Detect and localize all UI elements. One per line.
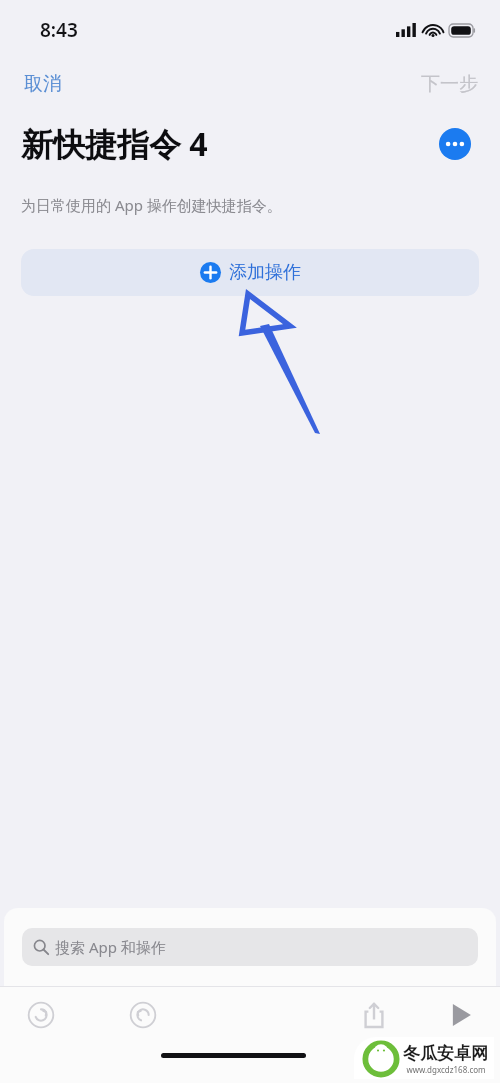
staticText: 冬瓜安卓网 — [403, 1043, 488, 1064]
button[interactable]: Run — [440, 994, 482, 1036]
staticText: 添加操作 — [229, 261, 301, 284]
button[interactable]: Undo — [20, 994, 62, 1036]
button[interactable]: Share — [353, 994, 395, 1036]
button[interactable]: Redo — [122, 994, 164, 1036]
staticText: 下一步 — [421, 72, 478, 96]
staticText: www.dgxcdz168.com — [406, 1064, 486, 1075]
staticText: 为日常使用的 App 操作创建快捷指令。 — [21, 195, 282, 215]
staticText: 新快捷指令 4 — [21, 122, 208, 166]
button[interactable]: More options — [439, 128, 471, 160]
staticText: 8:43 — [40, 17, 78, 43]
button[interactable]: 取消 — [16, 68, 70, 100]
button[interactable]: 下一步 — [415, 68, 484, 100]
button[interactable]: 搜索 App 和操作 — [22, 928, 478, 966]
staticText: 搜索 App 和操作 — [55, 937, 166, 957]
staticText: 取消 — [24, 72, 62, 96]
button[interactable]: 添加操作 — [21, 249, 479, 296]
